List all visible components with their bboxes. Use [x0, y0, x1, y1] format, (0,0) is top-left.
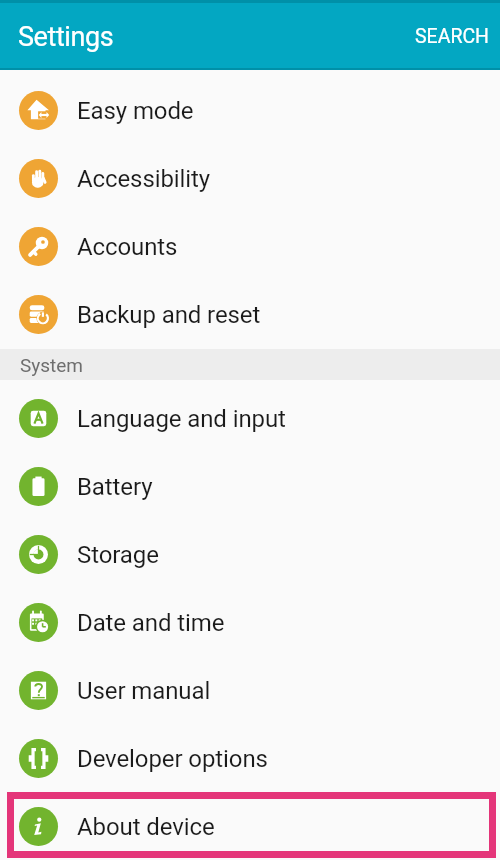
button[interactable]: Storage [0, 520, 500, 588]
staticText: Easy mode [77, 97, 194, 125]
button[interactable]: Language and input [0, 384, 500, 452]
staticText: System [20, 354, 84, 376]
staticText: Battery [77, 473, 153, 501]
other: Easy mode [19, 91, 58, 130]
other: User manual [19, 671, 58, 710]
staticText: Backup and reset [77, 301, 261, 329]
button[interactable]: Accounts [0, 212, 500, 280]
other: Accounts [19, 227, 58, 266]
button[interactable]: Backup and reset [0, 280, 500, 348]
staticText: Storage [77, 541, 159, 569]
staticText: About device [77, 813, 215, 841]
other: About device [19, 807, 58, 846]
button[interactable]: Date and time [0, 588, 500, 656]
button[interactable]: User manual [0, 656, 500, 724]
other: Storage [19, 535, 58, 574]
button[interactable]: Battery [0, 452, 500, 520]
button[interactable]: Accessibility [0, 144, 500, 212]
staticText: Settings [18, 21, 114, 53]
other: Language and input [19, 399, 58, 438]
staticText: Accounts [77, 233, 178, 261]
other: Backup and reset [19, 295, 58, 334]
staticText: Date and time [77, 609, 225, 637]
staticText: User manual [77, 677, 211, 705]
other: Battery [19, 467, 58, 506]
button[interactable]: Easy mode [0, 76, 500, 144]
button[interactable]: SEARCH [399, 3, 500, 68]
button[interactable]: Developer options [0, 724, 500, 792]
button[interactable]: About device [0, 792, 500, 860]
staticText: Accessibility [77, 165, 211, 193]
staticText: Developer options [77, 745, 268, 773]
staticText: SEARCH [415, 25, 490, 48]
other: Developer options [19, 739, 58, 778]
other: Date and time [19, 603, 58, 642]
other: Accessibility [19, 159, 58, 198]
staticText: Language and input [77, 405, 286, 433]
